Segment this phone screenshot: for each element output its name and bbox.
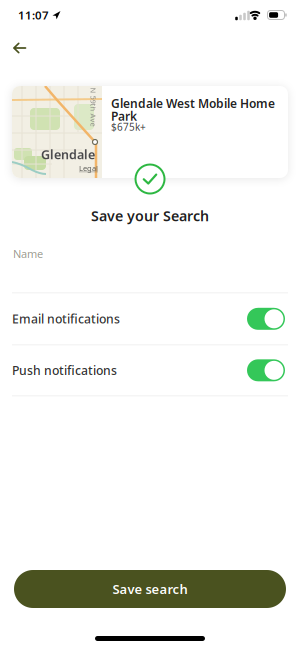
staticText: N 59th Ave bbox=[74, 102, 113, 112]
textField[interactable]: Name bbox=[13, 246, 300, 261]
button[interactable]: Back bbox=[0, 31, 26, 61]
staticText: Name bbox=[13, 246, 43, 261]
button[interactable]: Push notifications bbox=[247, 359, 285, 381]
staticText: 11:07 bbox=[18, 7, 49, 23]
staticText: Push notifications bbox=[12, 362, 117, 379]
staticText: Save search bbox=[112, 580, 187, 598]
staticText: Email notifications bbox=[12, 310, 120, 327]
staticText: Legal bbox=[79, 163, 98, 173]
button[interactable]: Save search bbox=[14, 570, 286, 608]
staticText: $675k+ bbox=[111, 120, 146, 134]
staticText: Save your Search bbox=[91, 206, 209, 225]
button[interactable]: Email notifications bbox=[247, 308, 285, 330]
staticText: Glendale bbox=[41, 146, 95, 163]
button[interactable]: N 59th Ave bbox=[12, 86, 288, 178]
staticText: Glendale West Mobile Home Park bbox=[111, 97, 275, 122]
